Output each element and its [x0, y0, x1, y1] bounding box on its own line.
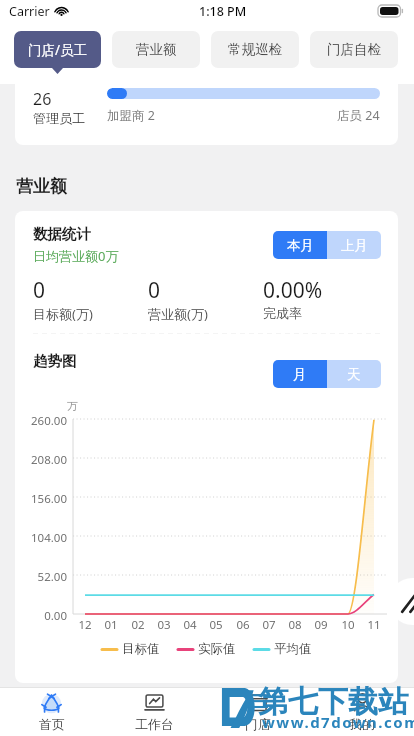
staticText: 完成率 — [263, 305, 302, 321]
staticText: 09 — [309, 617, 333, 633]
button[interactable]: 上月 — [327, 231, 381, 259]
staticText: 03 — [152, 617, 176, 633]
staticText: 156.00 — [15, 491, 67, 507]
staticText: 26 — [33, 88, 52, 110]
staticText: 我的 — [349, 716, 375, 732]
button[interactable]: 门店自检 — [310, 31, 398, 68]
staticText: 0.00 — [15, 608, 67, 624]
staticText: 日均营业额0万 — [33, 247, 119, 265]
staticText: 常规巡检 — [228, 41, 282, 58]
staticText: www.d7down.com — [262, 712, 414, 732]
staticText: 工作台 — [135, 716, 174, 732]
staticText: 天 — [347, 366, 361, 383]
staticText: 目标额(万) — [33, 305, 93, 323]
staticText: 0.00% — [263, 276, 323, 305]
button[interactable]: Quick actions — [389, 578, 414, 625]
staticText: 首页 — [39, 716, 65, 732]
staticText: 52.00 — [15, 569, 67, 585]
button[interactable]: 本月 — [273, 231, 327, 259]
button[interactable]: 天 — [327, 360, 381, 388]
button[interactable]: 门店 — [206, 688, 310, 736]
staticText: 趋势图 — [33, 352, 77, 370]
staticText: 07 — [257, 617, 281, 633]
staticText: 01 — [99, 617, 123, 633]
staticText: 1:18 PM — [199, 3, 247, 20]
staticText: 208.00 — [15, 452, 67, 468]
staticText: 本月 — [287, 237, 314, 254]
staticText: 02 — [126, 617, 150, 633]
staticText: 上月 — [341, 237, 368, 254]
staticText: 05 — [204, 617, 228, 633]
staticText: 营业额 — [136, 41, 177, 58]
button[interactable]: 营业额 — [112, 31, 200, 68]
staticText: 第七下载站 — [258, 683, 408, 721]
button[interactable]: 门店/员工 — [14, 31, 101, 68]
staticText: 店员 24 — [337, 107, 380, 124]
staticText: 12 — [73, 617, 97, 633]
staticText: 月 — [293, 366, 307, 383]
staticText: 营业额 — [16, 176, 67, 197]
staticText: 管理员工 — [33, 110, 85, 126]
staticText: 万 — [67, 399, 78, 413]
button[interactable]: 首页 — [0, 688, 103, 736]
staticText: 04 — [178, 617, 202, 633]
staticText: 10 — [336, 617, 360, 633]
staticText: 门店/员工 — [28, 41, 88, 59]
staticText: 实际值 — [198, 641, 236, 657]
staticText: 0 — [148, 276, 161, 305]
staticText: 营业额(万) — [148, 305, 208, 323]
button[interactable]: 26 — [15, 84, 398, 145]
staticText: 06 — [231, 617, 255, 633]
button[interactable]: 月 — [273, 360, 327, 388]
button[interactable]: 常规巡检 — [211, 31, 299, 68]
staticText: 数据统计 — [33, 225, 91, 243]
button[interactable]: 我的 — [310, 688, 414, 736]
staticText: 0 — [33, 276, 46, 305]
staticText: 11 — [362, 617, 386, 633]
staticText: 加盟商 2 — [107, 107, 155, 124]
staticText: 平均值 — [274, 641, 312, 657]
staticText: 门店自检 — [327, 41, 381, 58]
button[interactable]: 工作台 — [103, 688, 206, 736]
staticText: 260.00 — [15, 413, 67, 429]
staticText: 门店 — [245, 716, 271, 732]
staticText: Carrier — [9, 3, 50, 20]
staticText: 08 — [283, 617, 307, 633]
staticText: 目标值 — [122, 641, 160, 657]
staticText: 104.00 — [15, 530, 67, 546]
